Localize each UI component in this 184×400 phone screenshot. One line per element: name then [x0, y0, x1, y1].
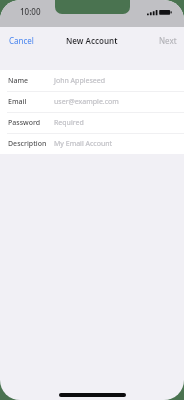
button[interactable]: Description — [0, 133, 184, 154]
staticText: My Email Account — [54, 139, 113, 149]
staticText: New Account — [66, 35, 118, 46]
staticText: Required — [54, 118, 84, 128]
staticText: Cancel — [9, 35, 34, 46]
staticText: 10:00 — [20, 6, 41, 17]
button[interactable]: Password — [0, 112, 184, 133]
staticText: Name — [8, 76, 29, 86]
staticText: user@example.com — [54, 97, 119, 107]
staticText: Email — [8, 97, 27, 107]
button[interactable]: Name — [0, 70, 184, 91]
button[interactable]: Email — [0, 91, 184, 112]
staticText: Password — [8, 118, 41, 128]
button[interactable]: Next — [150, 30, 184, 51]
button[interactable]: Cancel — [0, 30, 43, 51]
staticText: John Appleseed — [54, 76, 106, 86]
other: Cellular signal and battery level — [146, 7, 176, 19]
staticText: Description — [8, 139, 47, 149]
staticText: Next — [159, 35, 177, 46]
